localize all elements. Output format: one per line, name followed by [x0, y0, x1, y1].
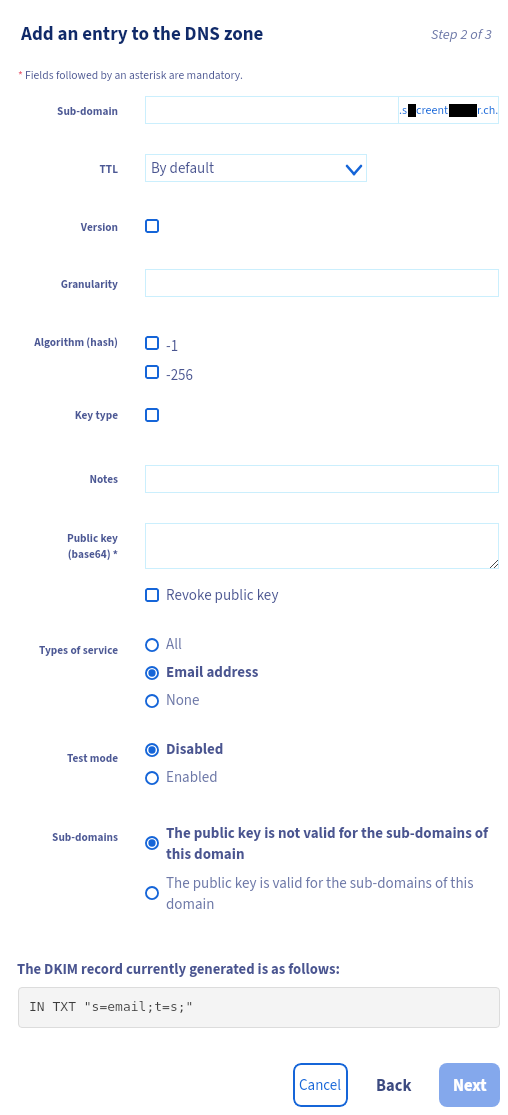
staticText: Email address [166, 662, 266, 683]
staticText: Version [80, 219, 118, 235]
staticText: All [166, 634, 196, 655]
button[interactable]: Next [439, 1063, 500, 1107]
staticText: Key type [74, 407, 118, 423]
staticText: Test mode [67, 750, 118, 766]
staticText: Cancel [299, 1075, 342, 1096]
staticText: None [166, 690, 216, 711]
staticText: Step 2 of 3 [431, 24, 492, 45]
staticText: Notes [89, 471, 118, 487]
staticText: Add an entry to the DNS zone [21, 21, 264, 48]
button[interactable] [143, 822, 494, 858]
button[interactable]: SHA-256 [145, 365, 159, 379]
staticText: Sub-domains [52, 829, 118, 845]
button[interactable] [143, 689, 219, 708]
staticText: Next [453, 1074, 487, 1097]
button[interactable]: Back [368, 1063, 420, 1107]
button[interactable]: By default [145, 154, 367, 182]
button[interactable] [143, 633, 199, 652]
button[interactable] [143, 872, 491, 908]
button[interactable] [145, 96, 399, 124]
button[interactable] [143, 661, 269, 680]
staticText: Revoke public key [166, 585, 279, 606]
staticText: The public key is not valid for the sub-… [166, 823, 491, 865]
button[interactable]: Revoke public key [145, 588, 159, 602]
staticText: .s [399, 102, 408, 119]
staticText: Fields followed by an asterisk are manda… [25, 67, 243, 84]
staticText: By default [151, 158, 215, 179]
staticText: creent [416, 102, 449, 119]
staticText: Public key [66, 530, 118, 546]
staticText: Granularity [60, 276, 118, 292]
button[interactable]: Key type [145, 408, 159, 422]
staticText: * [18, 67, 23, 84]
button[interactable]: .s [398, 96, 499, 124]
button[interactable] [145, 523, 499, 569]
staticText: TTL [99, 161, 118, 177]
staticText: Disabled [166, 739, 236, 760]
staticText: IN TXT "s=email;t=s;" [29, 999, 194, 1014]
button[interactable]: Version [145, 219, 159, 233]
staticText: (base64) * [67, 546, 118, 562]
button[interactable] [145, 269, 499, 297]
button[interactable]: Cancel [293, 1063, 348, 1107]
staticText: Back [376, 1074, 412, 1097]
staticText: The DKIM record currently generated is a… [17, 959, 341, 980]
button[interactable] [145, 465, 499, 493]
staticText: Types of service [38, 642, 118, 658]
staticText: -256 [166, 365, 194, 386]
staticText: -1 [166, 336, 179, 357]
staticText: Algorithm (hash) [34, 334, 118, 350]
staticText: The public key is valid for the sub-doma… [166, 873, 488, 915]
staticText: Enabled [166, 767, 236, 788]
staticText: Sub-domain [57, 103, 118, 119]
button[interactable]: SHA-1 [145, 336, 159, 350]
staticText: r.ch. [477, 102, 499, 119]
button[interactable] [143, 738, 239, 757]
button[interactable] [143, 766, 239, 785]
